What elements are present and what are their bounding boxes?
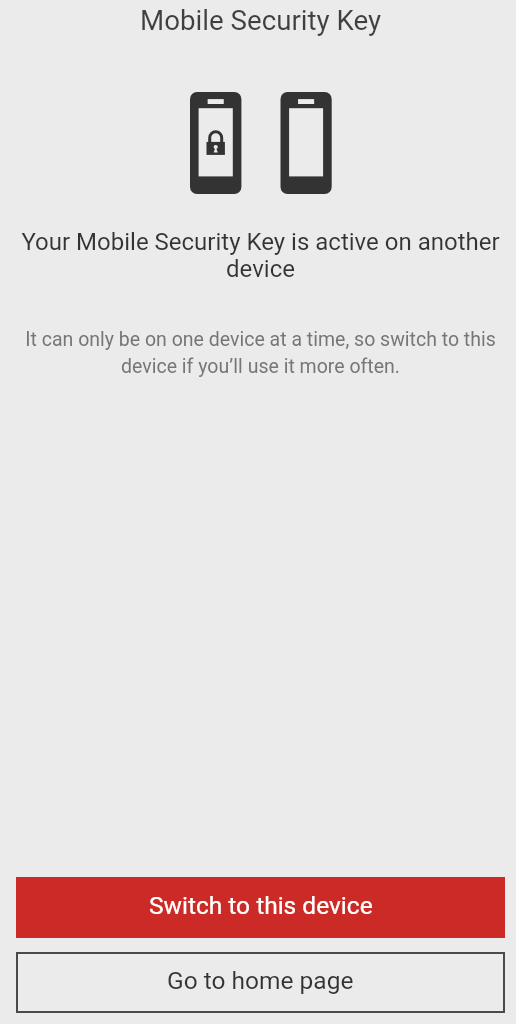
- button[interactable]: Go to home page: [16, 952, 505, 1013]
- staticText: Switch to this device: [149, 891, 373, 920]
- staticText: Go to home page: [167, 966, 354, 995]
- button[interactable]: Switch to this device: [16, 877, 505, 938]
- other: Two phones, security key active on the o…: [5, 92, 516, 194]
- staticText: Your Mobile Security Key is active on an…: [17, 228, 504, 283]
- staticText: Mobile Security Key: [140, 4, 382, 36]
- staticText: It can only be on one device at a time, …: [23, 328, 498, 377]
